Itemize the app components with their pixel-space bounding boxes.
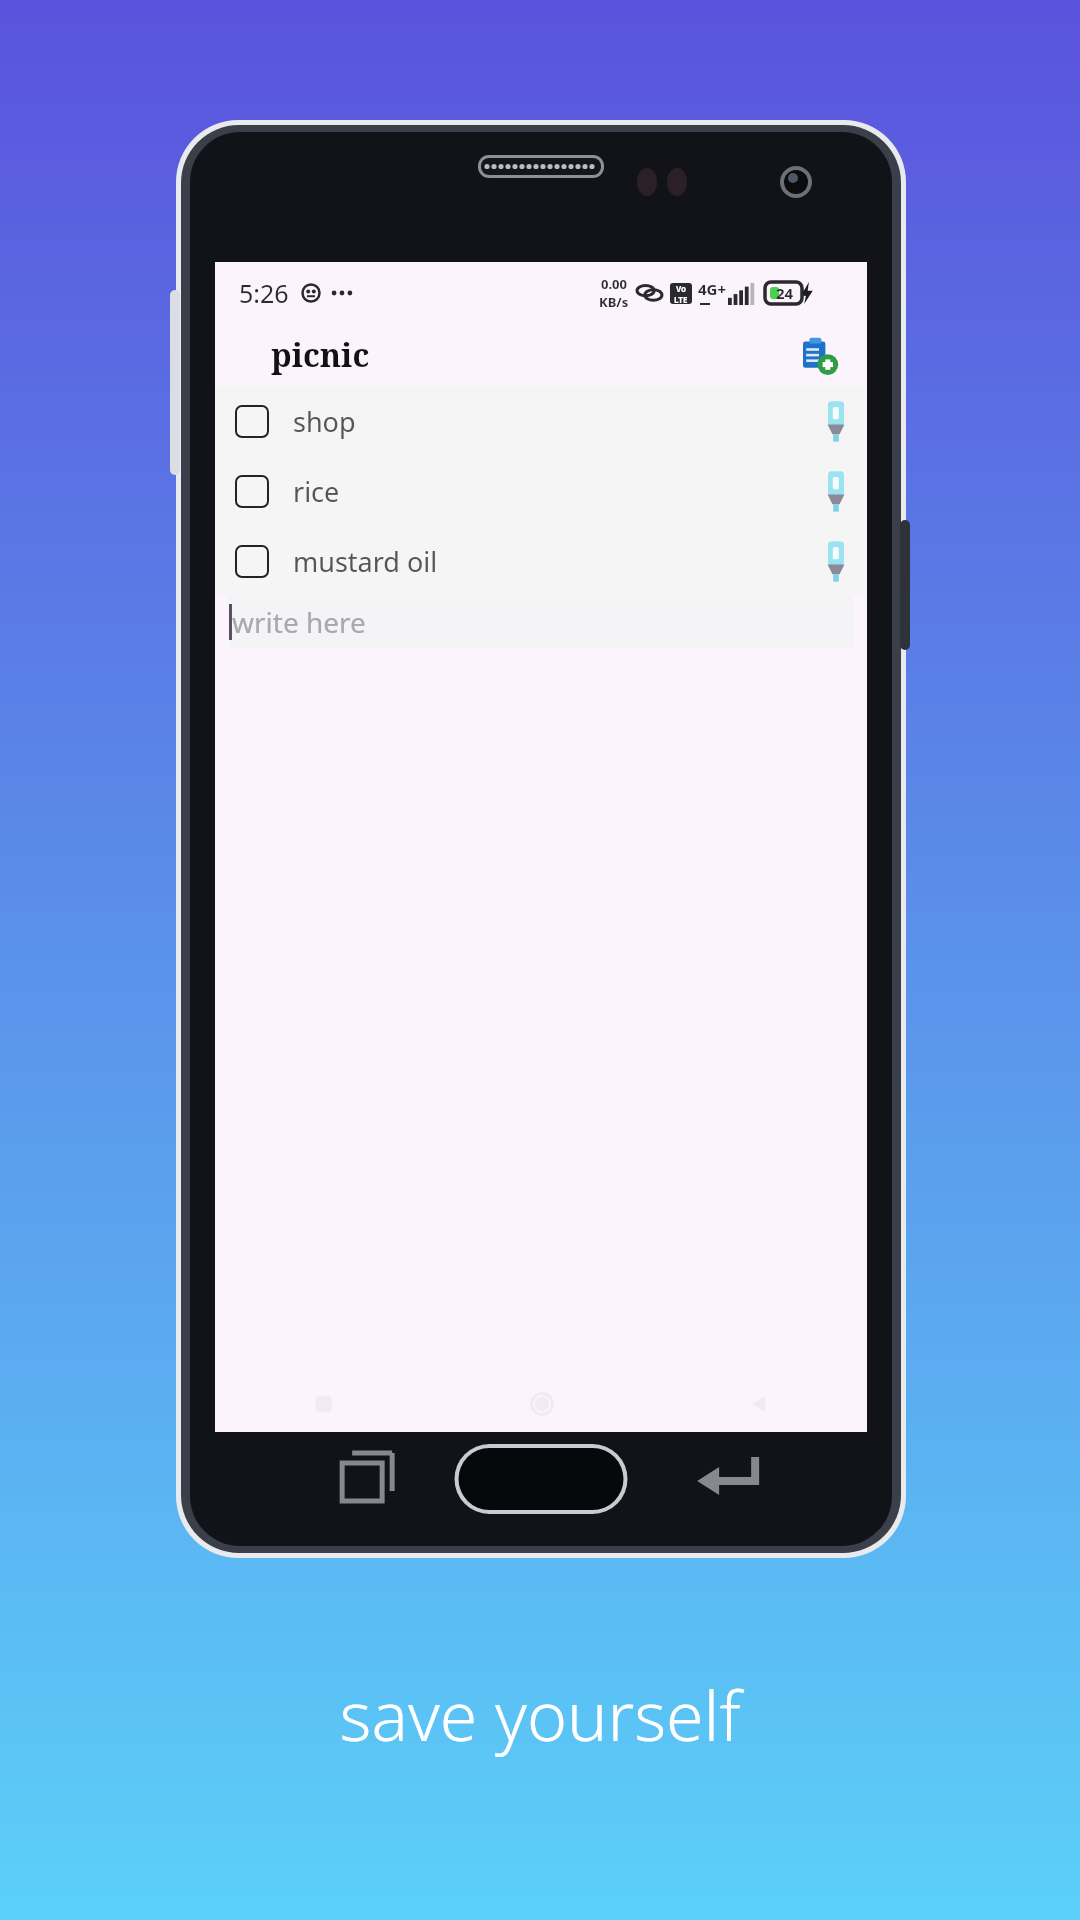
staticText: write here bbox=[232, 603, 366, 641]
button[interactable]: Add list bbox=[795, 331, 843, 379]
button[interactable]: Edit shop bbox=[823, 397, 849, 445]
button[interactable]: Toggle mustard oil bbox=[215, 526, 867, 596]
button[interactable]: Toggle shop bbox=[235, 405, 269, 438]
button[interactable]: Edit mustard oil bbox=[823, 537, 849, 585]
staticText: save yourself bbox=[0, 1668, 1080, 1761]
staticText: shop bbox=[293, 403, 356, 440]
button[interactable]: Edit rice bbox=[823, 467, 849, 515]
button[interactable]: Toggle rice bbox=[235, 475, 269, 508]
staticText: KB/s bbox=[599, 293, 629, 311]
staticText: 0.00 bbox=[601, 275, 627, 293]
staticText: picnic bbox=[271, 333, 370, 377]
staticText: Vo bbox=[676, 283, 687, 294]
staticText: rice bbox=[293, 473, 340, 510]
button[interactable]: Toggle rice bbox=[215, 456, 867, 526]
staticText: LTE bbox=[674, 294, 688, 304]
staticText: mustard oil bbox=[293, 543, 438, 580]
staticText: 24 bbox=[776, 283, 794, 303]
staticText: 5:26 bbox=[239, 276, 289, 310]
staticText: 4G+ bbox=[698, 279, 727, 299]
button[interactable]: Toggle mustard oil bbox=[235, 545, 269, 578]
button[interactable]: Toggle shop bbox=[215, 386, 867, 456]
button[interactable]: write here bbox=[229, 596, 853, 648]
